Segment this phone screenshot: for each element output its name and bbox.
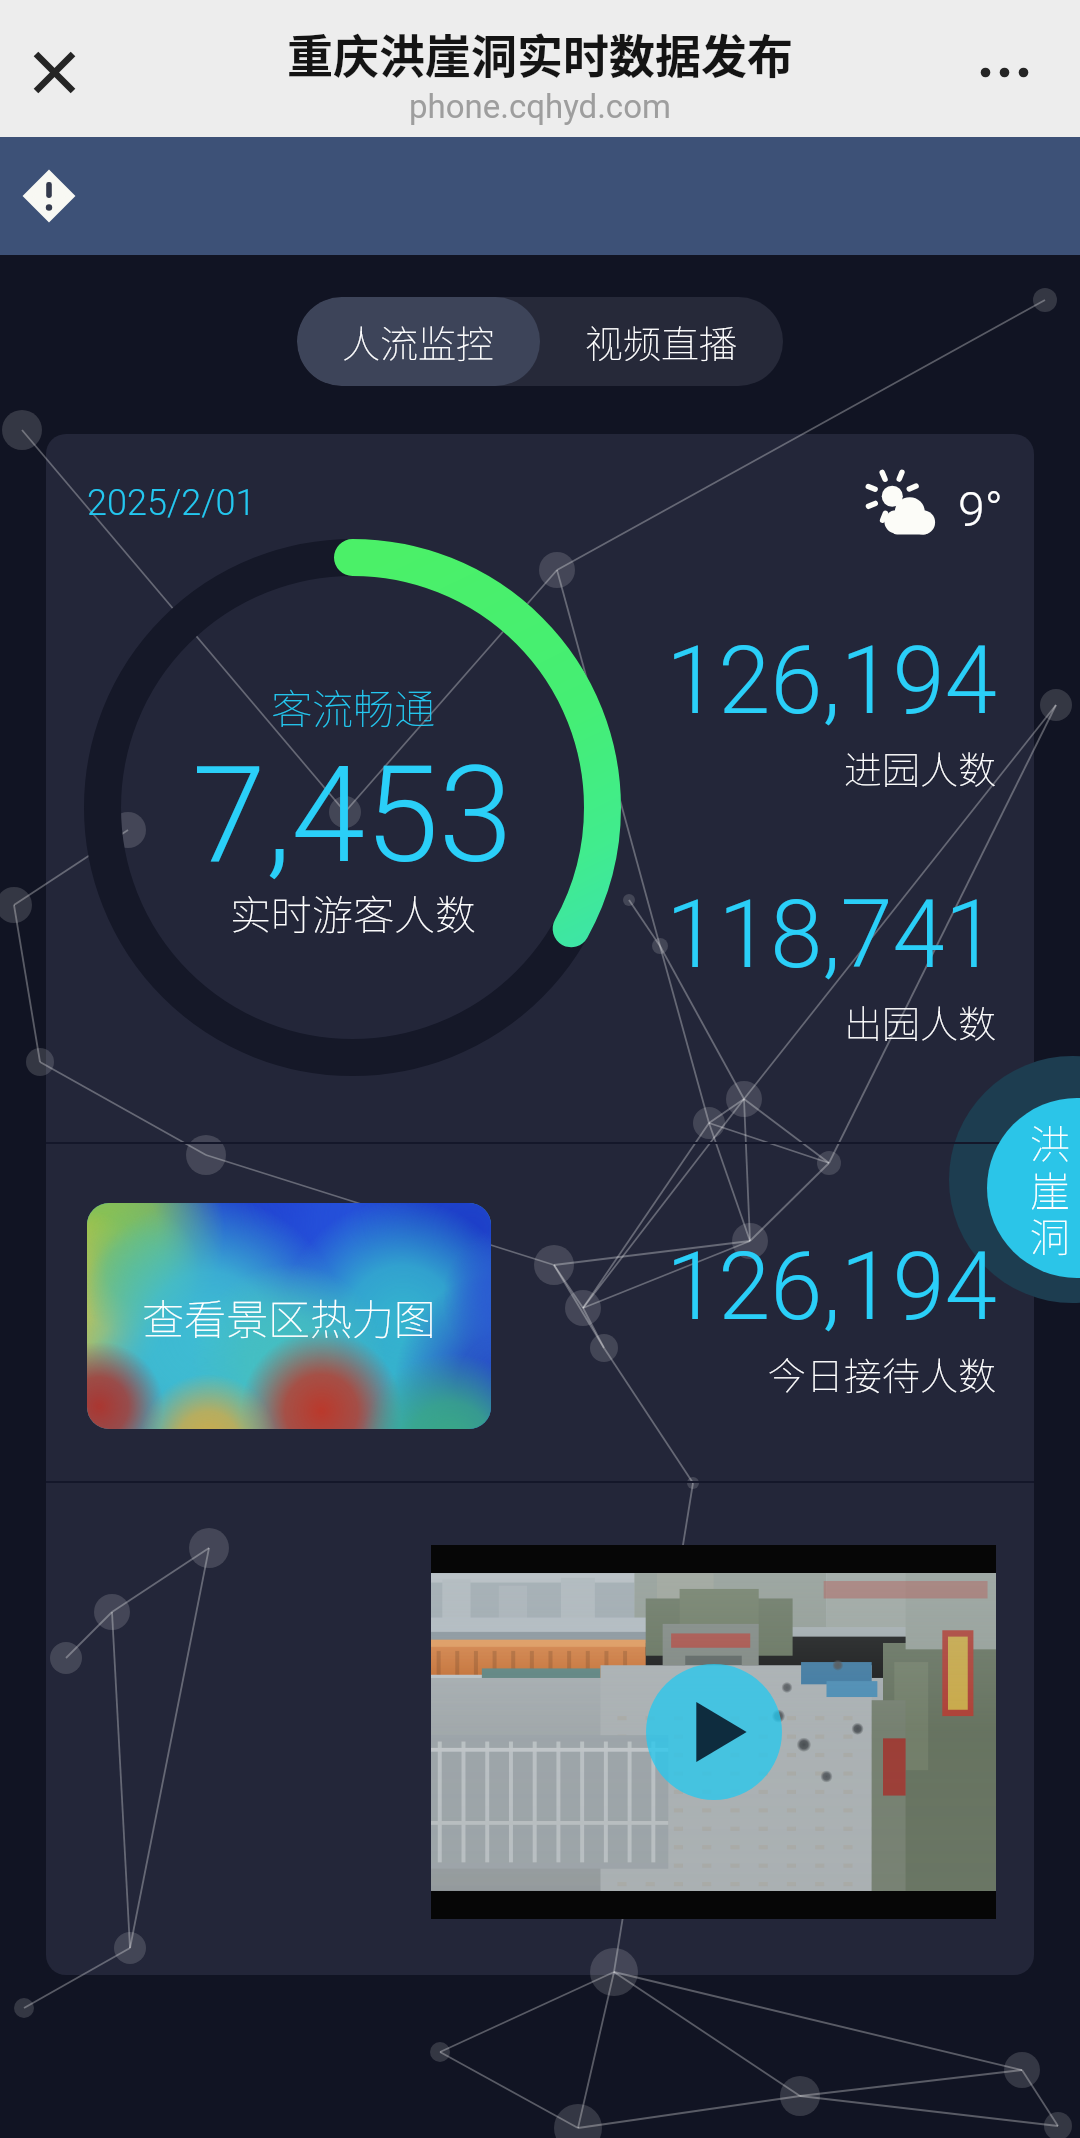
- staticText: phone.cqhyd.com: [409, 87, 671, 126]
- button[interactable]: 视频直播: [540, 297, 783, 386]
- button[interactable]: 洪 崖 洞: [987, 1098, 1080, 1278]
- staticText: 视频直播: [585, 314, 738, 369]
- staticText: 客流畅通: [271, 676, 435, 735]
- staticText: 出园人数: [844, 994, 997, 1049]
- button[interactable]: Play video: [431, 1545, 996, 1919]
- staticText: 人流监控: [342, 314, 495, 369]
- button[interactable]: More options: [968, 38, 1041, 111]
- staticText: 今日接待人数: [768, 1346, 997, 1401]
- staticText: 实时游客人数: [230, 882, 476, 941]
- staticText: 9°: [958, 481, 1003, 537]
- button[interactable]: Close: [18, 36, 91, 109]
- staticText: 重庆洪崖洞实时数据发布: [287, 20, 793, 87]
- staticText: 118,741: [666, 880, 997, 990]
- button[interactable]: 查看景区热力图: [87, 1203, 491, 1429]
- staticText: 2025/2/01: [87, 482, 256, 524]
- staticText: 洪 崖 洞: [1030, 1113, 1070, 1263]
- staticText: 126,194: [666, 1232, 997, 1342]
- button[interactable]: Security warning: [24, 171, 74, 221]
- button[interactable]: 人流监控: [297, 297, 540, 386]
- staticText: 7,453: [192, 738, 513, 894]
- staticText: 进园人数: [844, 740, 997, 795]
- staticText: 查看景区热力图: [142, 1286, 437, 1347]
- staticText: 126,194: [666, 626, 997, 736]
